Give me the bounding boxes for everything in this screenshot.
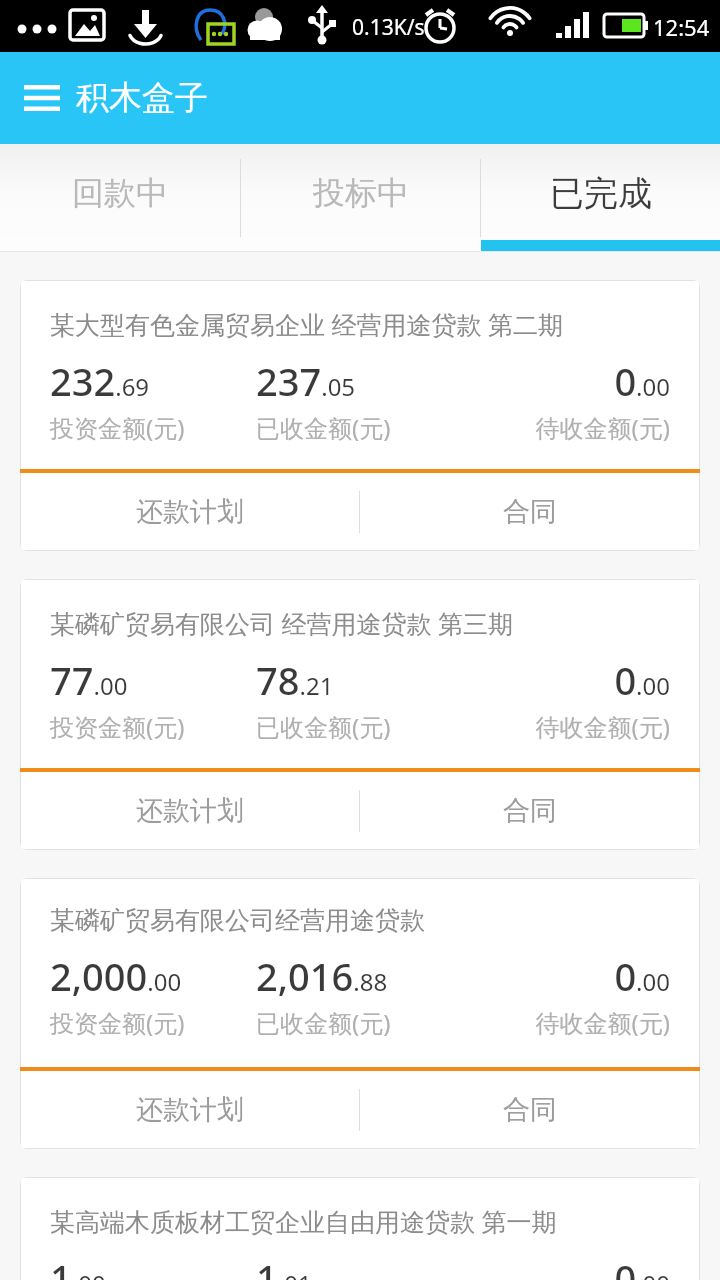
staticText: 237.05	[256, 355, 463, 407]
button[interactable]: Open navigation menu	[14, 70, 70, 126]
staticText: 投资金额(元)	[50, 710, 256, 743]
staticText: 0.00	[463, 654, 670, 706]
button[interactable]: 还款计划	[21, 772, 359, 849]
button[interactable]: 还款计划	[21, 473, 359, 550]
staticText: 0.13K/s	[352, 13, 425, 42]
staticText: 78.21	[256, 654, 463, 706]
staticText: 某磷矿贸易有限公司经营用途贷款	[50, 905, 425, 936]
staticText: 合同	[503, 1093, 557, 1127]
staticText: 0.00	[463, 1252, 670, 1280]
button[interactable]: 某磷矿贸易有限公司经营用途贷款	[20, 878, 700, 1149]
button[interactable]: 合同	[360, 1071, 699, 1148]
staticText: 1.00	[50, 1252, 256, 1280]
staticText: 已收金额(元)	[256, 1006, 463, 1039]
staticText: 232.69	[50, 355, 256, 407]
button[interactable]: 某大型有色金属贸易企业 经营用途贷款 第二期	[20, 280, 700, 551]
staticText: 12:54	[653, 12, 710, 42]
staticText: 还款计划	[136, 1093, 244, 1127]
staticText: 积木盒子	[76, 77, 208, 119]
staticText: 已收金额(元)	[256, 411, 463, 444]
button[interactable]: 合同	[360, 473, 699, 550]
staticText: 待收金额(元)	[463, 1006, 670, 1039]
staticText: 待收金额(元)	[463, 710, 670, 743]
button[interactable]: 回款中	[0, 144, 240, 252]
staticText: 已收金额(元)	[256, 710, 463, 743]
button[interactable]: 某高端木质板材工贸企业自由用途贷款 第一期	[20, 1177, 700, 1280]
staticText: 某大型有色金属贸易企业 经营用途贷款 第二期	[50, 307, 564, 341]
staticText: 1.01	[256, 1252, 463, 1280]
button[interactable]: 合同	[360, 772, 699, 849]
button[interactable]: 已完成	[481, 144, 720, 252]
button[interactable]: 某磷矿贸易有限公司 经营用途贷款 第三期	[20, 579, 700, 850]
staticText: 还款计划	[136, 495, 244, 529]
staticText: 已完成	[550, 172, 652, 215]
staticText: 投资金额(元)	[50, 1006, 256, 1039]
staticText: 待收金额(元)	[463, 411, 670, 444]
staticText: 合同	[503, 794, 557, 828]
staticText: 2,016.88	[256, 950, 463, 1002]
staticText: 投标中	[313, 173, 409, 213]
staticText: 某高端木质板材工贸企业自由用途贷款 第一期	[50, 1204, 557, 1238]
staticText: 合同	[503, 495, 557, 529]
staticText: 0.00	[463, 950, 670, 1002]
staticText: 某磷矿贸易有限公司 经营用途贷款 第三期	[50, 606, 514, 640]
staticText: 77.00	[50, 654, 256, 706]
staticText: 回款中	[72, 173, 168, 213]
button[interactable]: 投标中	[241, 144, 480, 252]
staticText: 2,000.00	[50, 950, 256, 1002]
staticText: 投资金额(元)	[50, 411, 256, 444]
staticText: 还款计划	[136, 794, 244, 828]
button[interactable]: 还款计划	[21, 1071, 359, 1148]
staticText: 0.00	[463, 355, 670, 407]
